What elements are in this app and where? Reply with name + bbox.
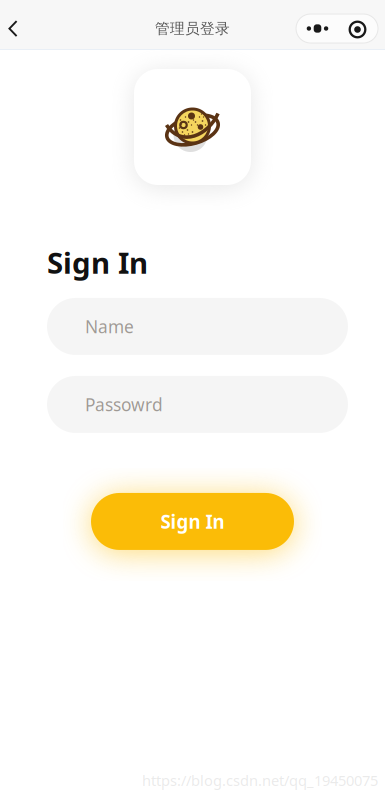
button[interactable]: More options bbox=[296, 14, 378, 43]
button[interactable]: Passowrd bbox=[47, 376, 348, 433]
staticText: Sign In bbox=[160, 509, 224, 534]
staticText: Name bbox=[85, 315, 134, 338]
staticText: Sign In bbox=[47, 243, 148, 282]
button[interactable]: Name bbox=[47, 298, 348, 355]
staticText: 管理员登录 bbox=[155, 19, 230, 37]
button[interactable]: Sign In bbox=[91, 493, 294, 550]
staticText: https://blog.csdn.net/qq_19450075 bbox=[142, 770, 378, 790]
staticText: Passowrd bbox=[85, 393, 163, 416]
button[interactable]: Back bbox=[0, 8, 26, 48]
